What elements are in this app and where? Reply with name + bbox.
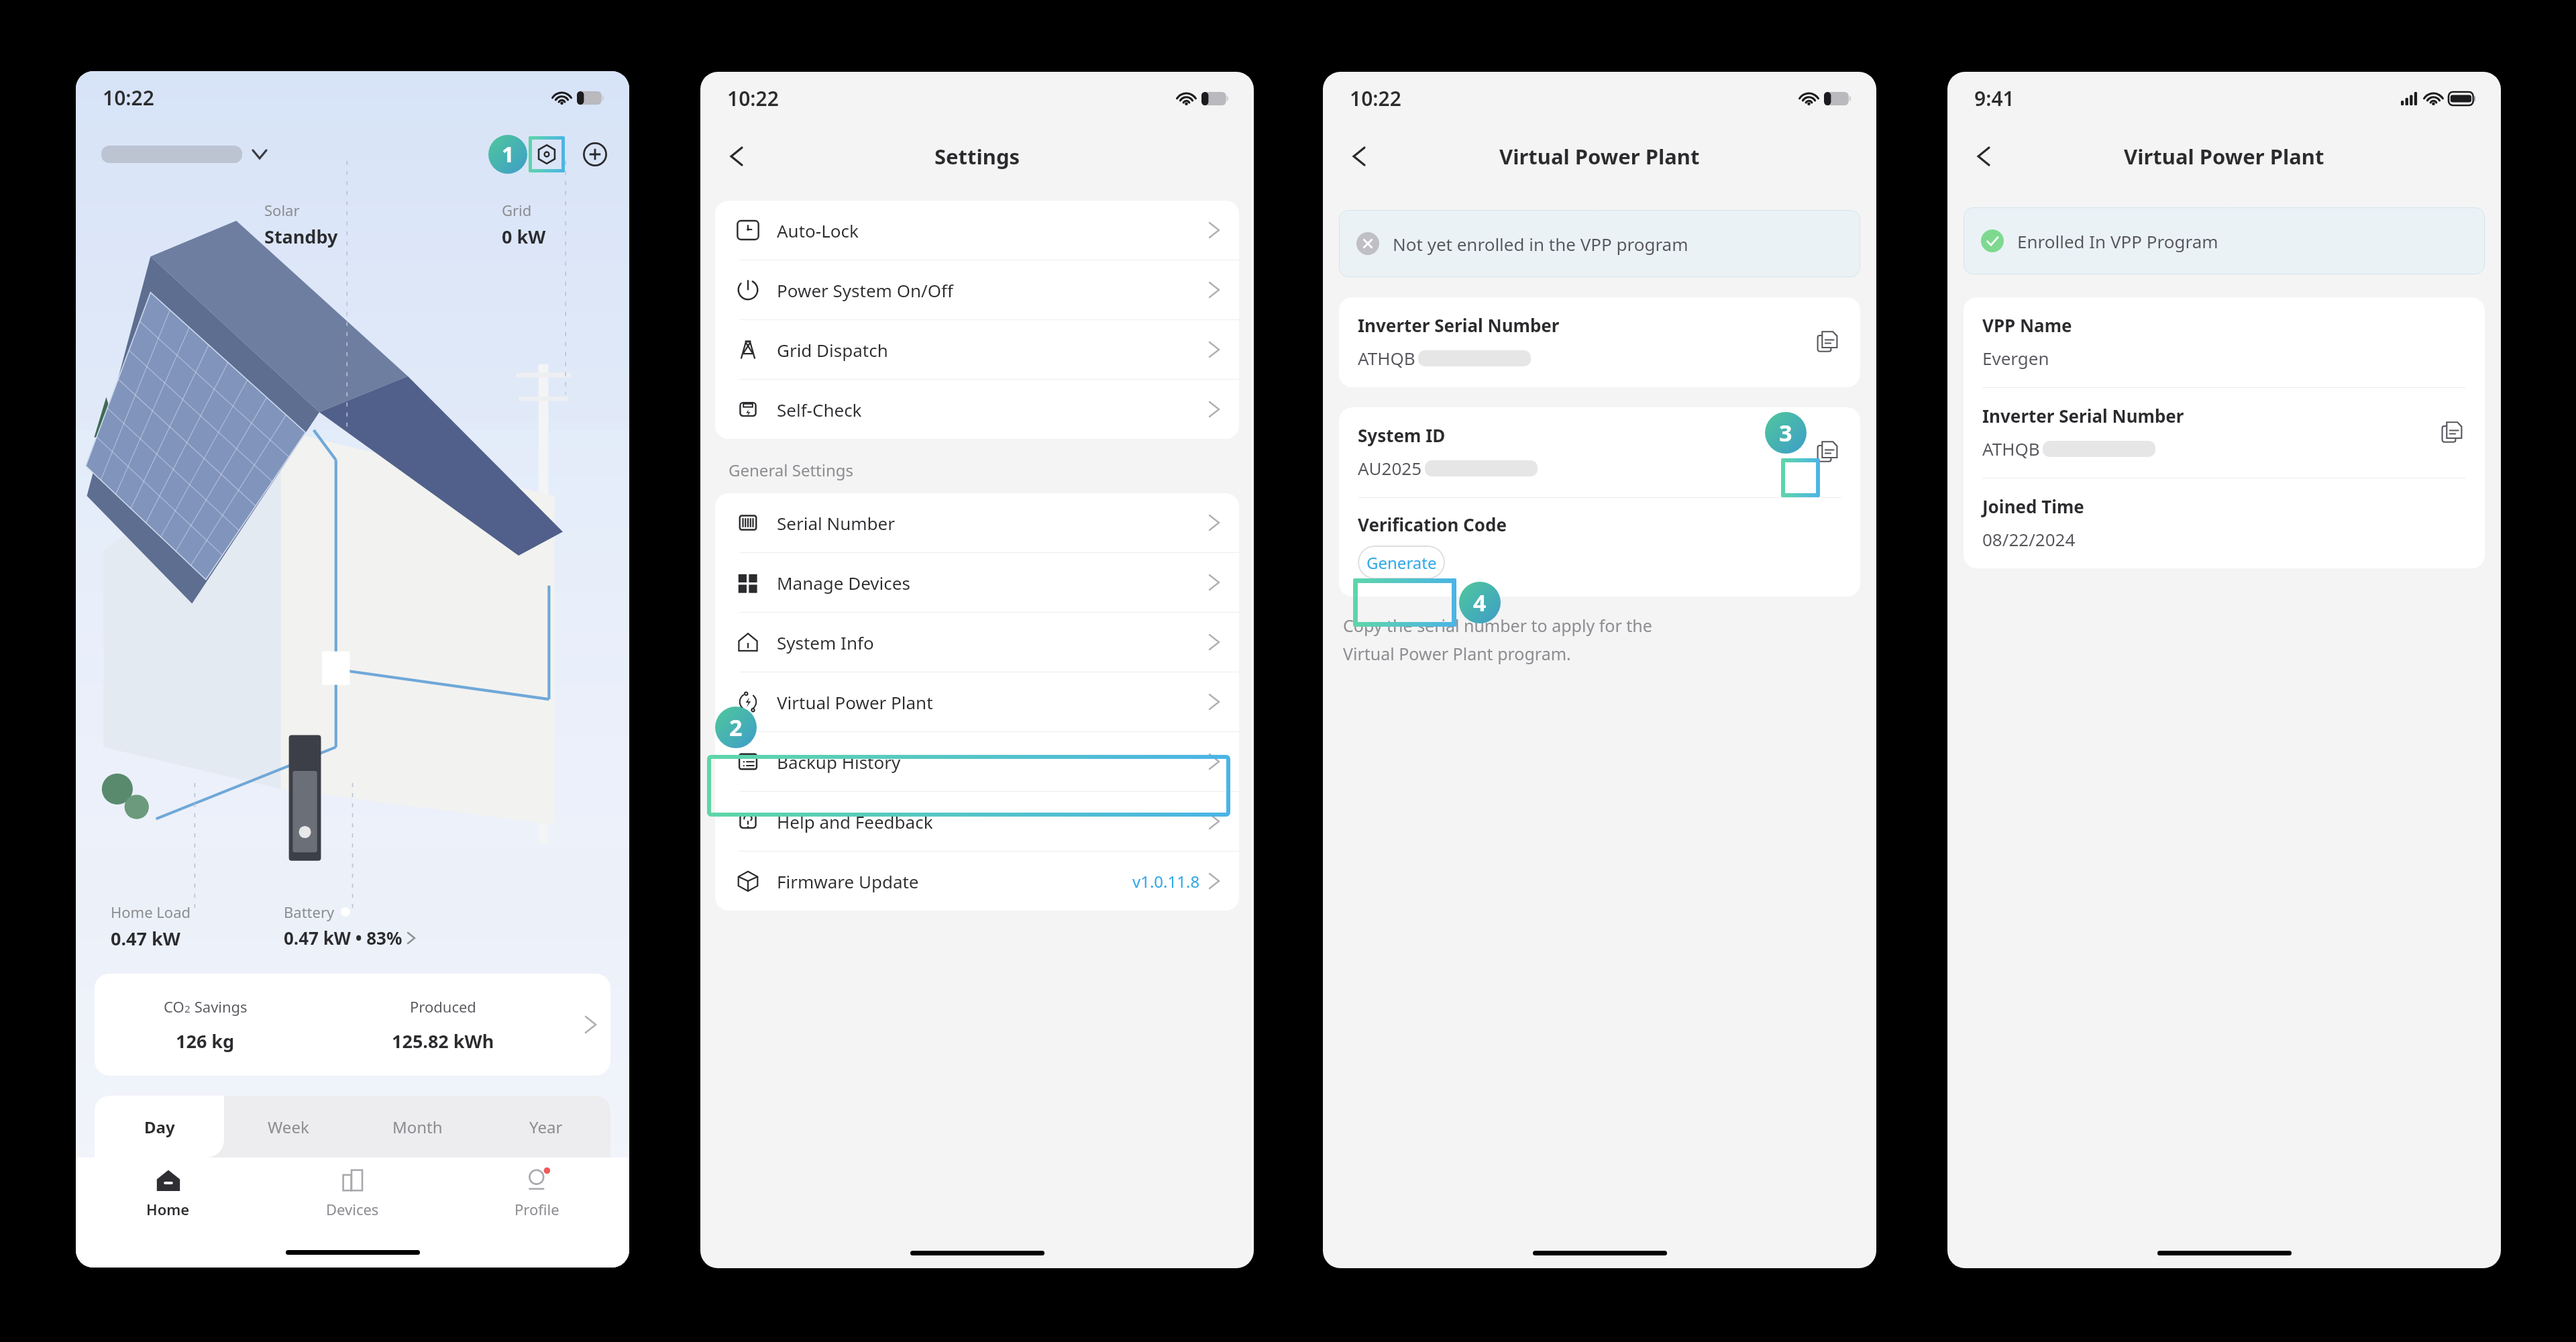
staticText: v1.0.11.8 [1132,870,1200,892]
button[interactable]: Power System On/Off [715,260,1239,319]
staticText: 2 [729,712,743,743]
staticText: Settings [934,142,1020,170]
staticText: 10:22 [1350,85,1401,112]
staticText: ATHQB [1982,437,2040,460]
staticText: Month [392,1116,443,1138]
staticText: System Info [777,631,874,654]
staticText: System ID [1358,423,1446,447]
staticText: Not yet enrolled in the VPP program [1393,232,1688,256]
button[interactable]: Grid Dispatch [715,319,1239,379]
staticText: Devices [326,1199,379,1219]
button[interactable]: Copy [1812,326,1843,357]
staticText: 4 [1473,587,1487,618]
staticText: Joined Time [1982,495,2084,518]
button[interactable]: Self-Check [715,379,1239,439]
staticText: Solar [264,200,300,220]
staticText: Year [529,1116,563,1138]
staticText: Enrolled In VPP Program [2017,229,2218,253]
button[interactable]: Auto-Lock [715,201,1239,260]
staticText: Produced [410,996,476,1017]
staticText: Profile [515,1199,559,1219]
staticText: Day [144,1116,175,1138]
button[interactable]: System Info [715,612,1239,672]
staticText: Inverter Serial Number [1982,404,2184,427]
staticText: 9:41 [1974,85,2015,112]
staticText: 08/22/2024 [1982,527,2076,551]
button[interactable]: Add [581,140,609,168]
button[interactable]: Copy [1812,436,1843,467]
staticText: Savings [191,996,248,1017]
button[interactable]: Day [95,1096,224,1157]
staticText: Self-Check [777,398,862,421]
staticText: 3 [1779,417,1792,448]
button[interactable]: Back [716,136,757,176]
staticText: Help and Feedback [777,810,933,833]
staticText: Manage Devices [777,571,910,595]
button[interactable]: Serial Number [715,493,1239,552]
staticText: General Settings [729,459,854,481]
button[interactable]: Profile [445,1167,629,1237]
staticText: Virtual Power Plant [2124,142,2324,170]
staticText: 126 kg [176,1029,235,1053]
staticText: Standby [264,224,338,249]
button[interactable]: Year [482,1096,610,1157]
button[interactable]: Help and Feedback [715,791,1239,851]
staticText: AU2025 [1358,456,1422,480]
staticText: Home [146,1199,190,1219]
staticText: Firmware Update [777,870,919,893]
staticText: Home Load [111,902,191,922]
button[interactable] [101,146,266,163]
staticText: 10:22 [103,84,154,111]
button[interactable]: Manage Devices [715,552,1239,612]
staticText: Inverter Serial Number [1358,313,1560,337]
staticText: 0.47 kW [111,926,180,951]
staticText: Grid Dispatch [777,338,888,362]
button[interactable]: Month [353,1096,482,1157]
staticText: 1 [502,140,515,169]
button[interactable]: Firmware Update [715,851,1239,911]
staticText: CO [164,996,184,1017]
button[interactable]: Settings [529,136,565,172]
staticText: Battery [284,902,335,922]
staticText: Power System On/Off [777,278,953,302]
staticText: Virtual Power Plant [1499,142,1700,170]
staticText: Auto-Lock [777,219,859,242]
button[interactable]: Virtual Power Plant [715,672,1239,731]
button[interactable]: Back [1964,136,2004,176]
staticText: 10:22 [727,85,779,112]
staticText: Serial Number [777,511,895,535]
button[interactable]: Devices [260,1167,445,1237]
button[interactable]: Backup History [715,731,1239,791]
button[interactable]: Copy [2436,417,2467,448]
staticText: Copy the serial number to apply for the [1343,614,1652,637]
staticText: Evergen [1982,346,2049,370]
staticText: 0.47 kW • 83% [284,926,402,949]
staticText: 2 [184,1002,191,1015]
staticText: Grid [502,200,532,220]
staticText: Backup History [777,750,901,774]
button[interactable]: Back [1339,136,1379,176]
button[interactable]: CO [95,974,610,1076]
staticText: Week [268,1116,309,1138]
button[interactable]: Generate [1358,546,1445,579]
staticText: VPP Name [1982,313,2072,337]
button[interactable]: Home [76,1167,260,1237]
staticText: 125.82 kWh [392,1029,494,1053]
staticText: Generate [1366,552,1437,574]
staticText: 0 kW [502,224,546,249]
staticText: Verification Code [1358,513,1507,536]
staticText: ATHQB [1358,346,1415,370]
staticText: Virtual Power Plant program. [1343,642,1571,665]
button[interactable]: Week [224,1096,353,1157]
staticText: Virtual Power Plant [777,690,933,714]
